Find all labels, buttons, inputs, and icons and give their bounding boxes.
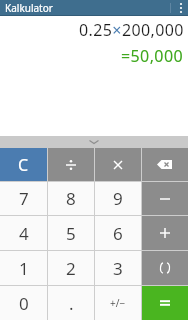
button[interactable]: 0 [0,286,47,320]
staticText: 9 [113,187,123,210]
button[interactable]: 5 [48,216,94,250]
button[interactable] [95,148,141,181]
button[interactable]: . [48,286,94,320]
staticText: C [18,154,29,176]
button[interactable]: 2 [48,251,94,285]
button[interactable] [0,136,188,148]
button[interactable] [142,251,188,285]
button[interactable]: 1 [0,251,47,285]
staticText: 8 [66,187,76,210]
staticText: 1 [19,257,29,280]
staticText: =50,000 [121,45,184,67]
button[interactable]: 8 [48,182,94,215]
staticText: 2 [66,257,76,280]
button[interactable]: 6 [95,216,141,250]
button[interactable]: 4 [0,216,47,250]
button[interactable] [142,216,188,250]
staticText: 3 [113,257,123,280]
button[interactable]: 3 [95,251,141,285]
button[interactable] [48,148,94,181]
button[interactable]: +/− [95,286,141,320]
staticText: 0.25×200,000 [79,19,184,41]
staticText: +/− [110,296,126,310]
staticText: 4 [19,222,29,245]
staticText: 6 [113,222,123,245]
button[interactable]: 9 [95,182,141,215]
staticText: Kalkulator [5,1,53,15]
button[interactable] [142,148,188,181]
staticText: 5 [66,222,76,245]
button[interactable]: C [0,148,47,181]
button[interactable]: 7 [0,182,47,215]
staticText: . [69,292,74,315]
staticText: 7 [19,187,29,210]
button[interactable] [142,182,188,215]
staticText: 0 [19,292,29,315]
button[interactable] [174,0,188,16]
button[interactable] [142,286,188,320]
